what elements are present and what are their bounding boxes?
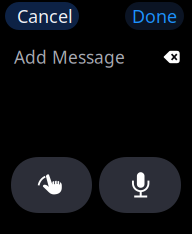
button[interactable]: Delete bbox=[160, 45, 184, 69]
staticText: Add Message bbox=[14, 45, 125, 69]
button[interactable]: Done bbox=[125, 2, 184, 30]
staticText: Done bbox=[132, 4, 177, 28]
staticText: Cancel bbox=[17, 4, 73, 28]
button[interactable]: Cancel bbox=[5, 2, 79, 30]
button[interactable]: Dictate bbox=[99, 157, 181, 213]
button[interactable]: Scribble bbox=[11, 157, 92, 213]
